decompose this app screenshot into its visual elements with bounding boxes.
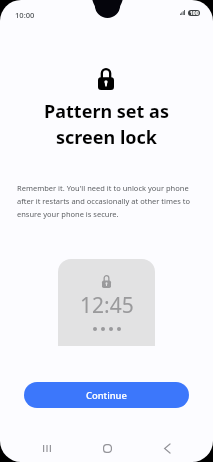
button[interactable]: Recent apps xyxy=(33,434,61,462)
button[interactable]: Continue xyxy=(24,382,189,408)
staticText: 10:00 xyxy=(15,10,35,20)
staticText: Pattern set as screen lock xyxy=(44,99,169,149)
staticText: 12:45 xyxy=(80,291,134,320)
staticText: Continue xyxy=(86,389,127,402)
staticText: Remember it. You'll need it to unlock yo… xyxy=(17,183,195,219)
staticText: 100 xyxy=(190,10,199,16)
button[interactable]: Back xyxy=(153,434,181,462)
button[interactable]: Home xyxy=(93,434,121,462)
